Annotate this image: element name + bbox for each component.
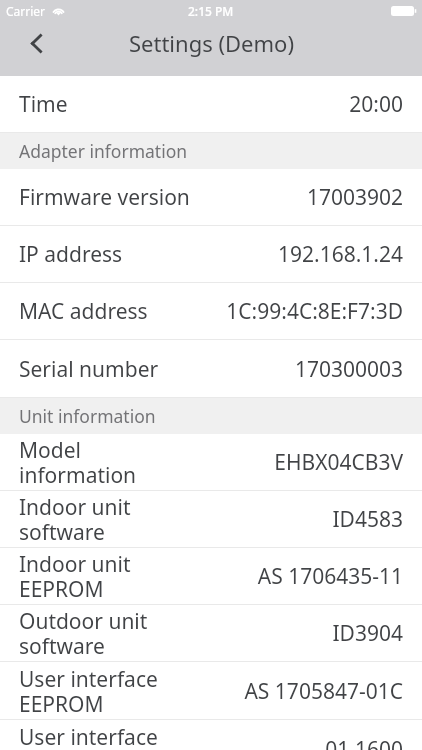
staticText: Settings (Demo)	[129, 28, 294, 58]
button[interactable]: Indoor unit software	[0, 491, 422, 548]
staticText: ID4583	[332, 505, 403, 534]
staticText: 20:00	[349, 90, 403, 119]
staticText: 17003902	[306, 183, 403, 212]
button[interactable]: Firmware version	[0, 169, 422, 226]
button[interactable]: IP address	[0, 226, 422, 283]
staticText: ID3904	[332, 619, 403, 648]
staticText: Serial number	[19, 355, 159, 384]
staticText: Time	[19, 90, 68, 119]
staticText: AS 1706435-11	[257, 562, 403, 591]
staticText: 192.168.1.24	[278, 240, 403, 269]
staticText: IP address	[19, 240, 123, 269]
button[interactable]: Outdoor unit software	[0, 605, 422, 662]
button[interactable]: Serial number	[0, 340, 422, 398]
staticText: Outdoor unit software	[19, 607, 197, 660]
staticText: User interface EEPROM	[19, 665, 197, 718]
button[interactable]: MAC address	[0, 283, 422, 340]
button[interactable]: Indoor unit EEPROM	[0, 548, 422, 605]
button[interactable]: Time	[0, 76, 422, 133]
button[interactable]: Model information	[0, 434, 422, 491]
button[interactable]: Back	[0, 21, 62, 65]
staticText: Model information	[19, 436, 197, 489]
staticText: MAC address	[19, 297, 148, 326]
button[interactable]: User interface software	[0, 720, 422, 750]
staticText: EHBX04CB3V	[274, 448, 403, 477]
staticText: 2:15 PM	[188, 3, 234, 19]
staticText: 1C:99:4C:8E:F7:3D	[226, 297, 403, 326]
staticText: Unit information	[19, 404, 156, 428]
staticText: Firmware version	[19, 183, 190, 212]
staticText: AS 1705847-01C	[244, 677, 403, 706]
button[interactable]: User interface EEPROM	[0, 662, 422, 720]
staticText: 01.1600	[325, 735, 403, 750]
staticText: User interface software	[19, 723, 197, 750]
staticText: Carrier	[6, 3, 46, 19]
staticText: 170300003	[294, 355, 403, 384]
staticText: Adapter information	[19, 139, 188, 163]
staticText: Indoor unit EEPROM	[19, 550, 197, 603]
staticText: Indoor unit software	[19, 493, 197, 546]
